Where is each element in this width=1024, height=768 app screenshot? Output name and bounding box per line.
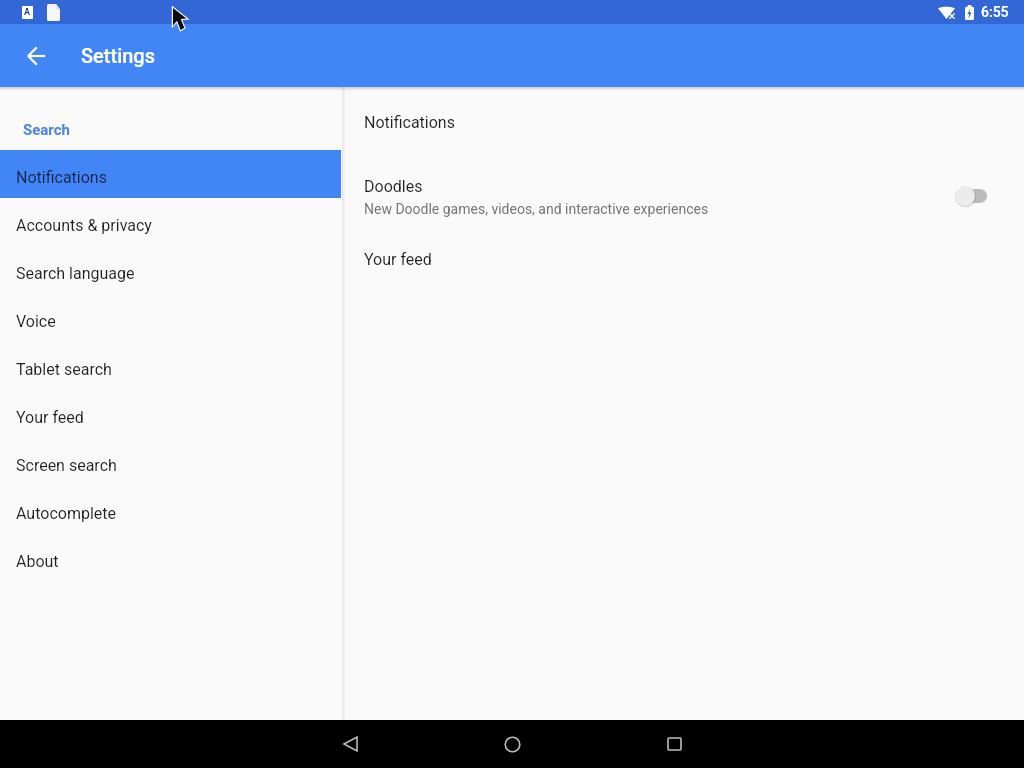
button[interactable]: Notifications (0, 150, 341, 198)
staticText: 6:55 (981, 4, 1009, 20)
button[interactable]: Screen search (0, 438, 341, 486)
staticText: Search language (16, 264, 135, 283)
button[interactable]: Accounts & privacy (0, 198, 341, 246)
staticText: New Doodle games, videos, and interactiv… (364, 201, 709, 217)
button[interactable]: Your feed (0, 390, 341, 438)
button[interactable]: Back (326, 720, 374, 768)
button[interactable]: Voice (0, 294, 341, 342)
button[interactable]: Recents (650, 720, 698, 768)
staticText: Tablet search (16, 360, 112, 379)
button[interactable]: Navigate up (4, 24, 68, 87)
staticText: Voice (16, 312, 56, 331)
staticText: Doodles (364, 177, 423, 196)
staticText: A (24, 7, 31, 18)
staticText: Your feed (16, 408, 84, 427)
button[interactable]: Home (488, 720, 536, 768)
staticText: About (16, 552, 59, 571)
staticText: Notifications (364, 113, 455, 132)
staticText: Search (23, 121, 70, 139)
staticText: Autocomplete (16, 504, 116, 523)
button[interactable]: Tablet search (0, 342, 341, 390)
staticText: Screen search (16, 456, 117, 475)
staticText: Accounts & privacy (16, 216, 152, 235)
staticText: Settings (81, 44, 156, 67)
button[interactable]: Search language (0, 246, 341, 294)
button[interactable]: Autocomplete (0, 486, 341, 534)
staticText: Your feed (364, 250, 432, 269)
staticText: Notifications (16, 168, 107, 187)
button[interactable]: About (0, 534, 341, 582)
button[interactable]: Doodles (342, 169, 1024, 221)
